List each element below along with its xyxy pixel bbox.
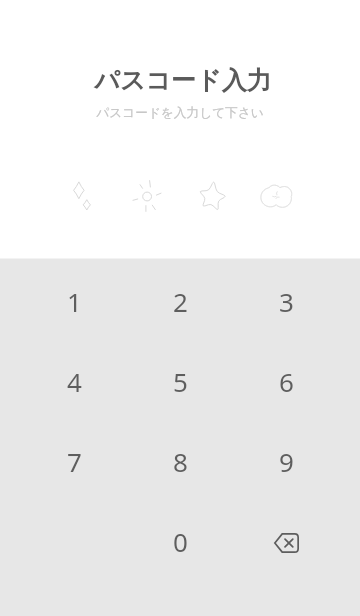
- staticText: 6: [279, 364, 294, 399]
- staticText: 3: [279, 284, 294, 319]
- staticText: パスコードを入力して下さい: [96, 105, 264, 121]
- button[interactable]: 6: [233, 342, 339, 422]
- button[interactable]: 2: [127, 262, 233, 342]
- button[interactable]: 5: [127, 342, 233, 422]
- button[interactable]: 4: [21, 342, 127, 422]
- button[interactable]: 1: [21, 262, 127, 342]
- button[interactable]: 8: [127, 422, 233, 502]
- staticText: 2: [173, 284, 188, 319]
- staticText: 7: [67, 444, 82, 479]
- staticText: 8: [173, 444, 188, 479]
- staticText: 4: [67, 364, 82, 399]
- staticText: 9: [279, 444, 294, 479]
- button[interactable]: 0: [127, 502, 233, 582]
- button[interactable]: 7: [21, 422, 127, 502]
- button[interactable]: 9: [233, 422, 339, 502]
- other: Backspace: [274, 533, 299, 553]
- button[interactable]: 3: [233, 262, 339, 342]
- staticText: パスコード入力: [94, 65, 272, 96]
- button[interactable]: Backspace: [233, 502, 339, 582]
- staticText: 5: [173, 364, 188, 399]
- staticText: 1: [67, 284, 82, 319]
- staticText: 0: [173, 524, 188, 559]
